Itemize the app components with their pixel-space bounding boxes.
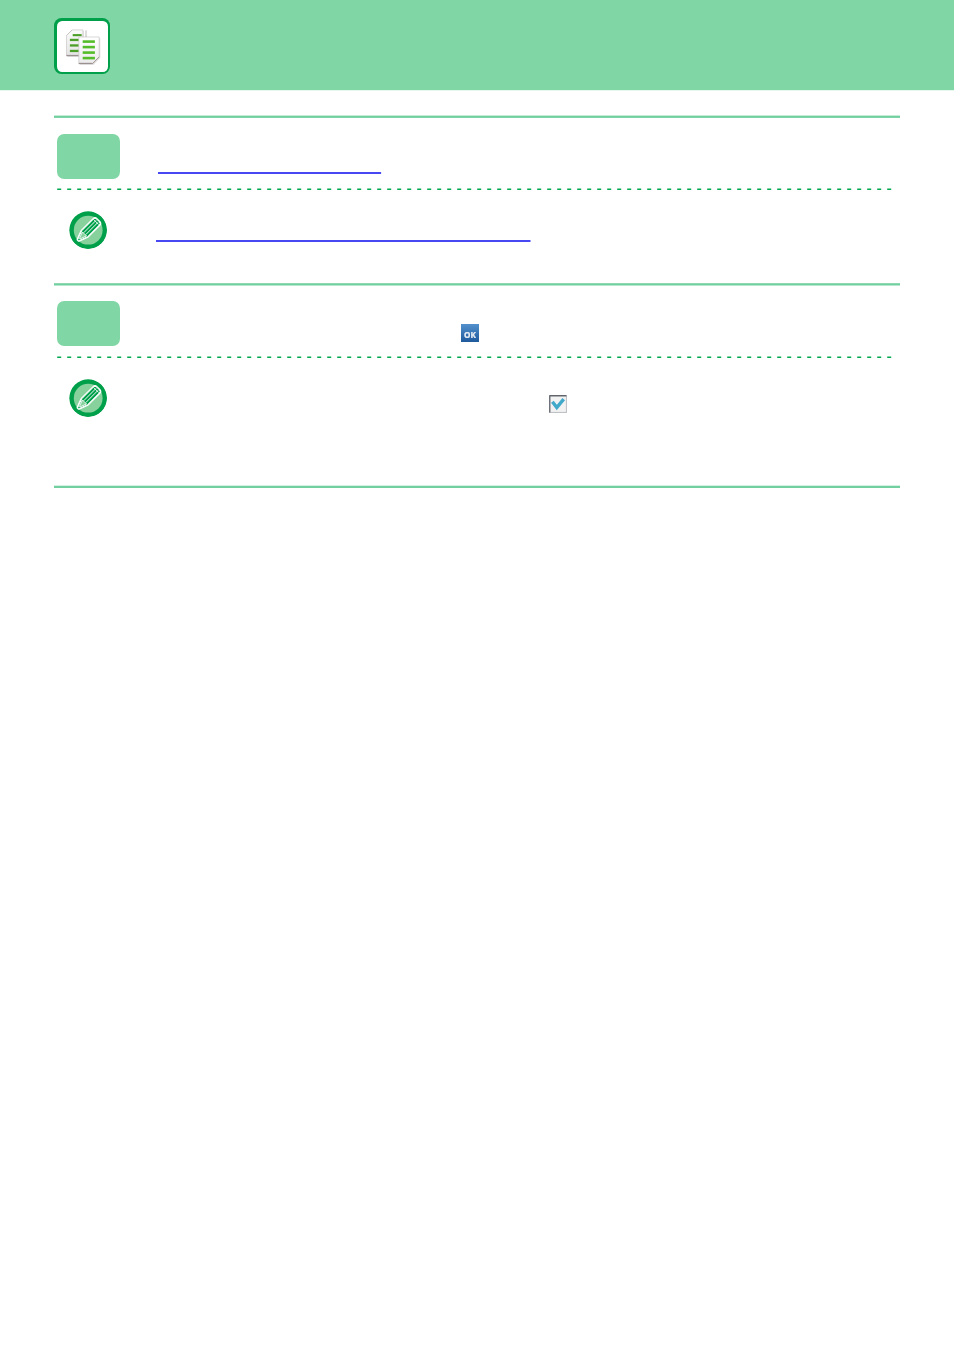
button[interactable]: Step xyxy=(57,301,120,346)
button[interactable]: Open related topic xyxy=(158,160,381,175)
button[interactable]: Copy xyxy=(54,18,110,74)
button[interactable]: Step xyxy=(57,134,120,179)
button[interactable]: OK xyxy=(461,324,479,342)
staticText: OK xyxy=(464,329,476,340)
button[interactable]: Open related topic xyxy=(156,228,531,243)
button[interactable]: Note xyxy=(69,211,107,249)
button[interactable]: Note xyxy=(69,379,107,417)
button[interactable]: Checkbox selected xyxy=(549,395,567,413)
